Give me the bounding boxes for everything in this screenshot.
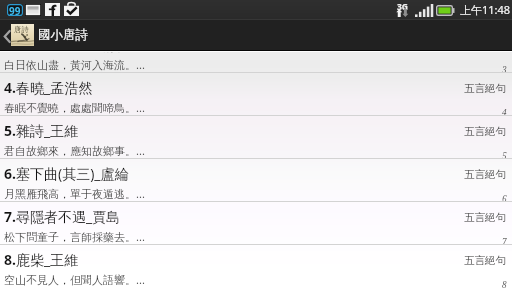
staticText: 五言絕句: [464, 254, 506, 267]
staticText: 6.塞下曲(其三)_盧綸: [4, 164, 129, 183]
staticText: 空山不見人，但聞人語響。...: [4, 272, 145, 287]
staticText: 5: [502, 150, 507, 162]
staticText: 春眠不覺曉，處處聞啼鳥。...: [4, 100, 145, 115]
staticText: 4: [502, 107, 507, 119]
staticText: 上午11:48: [460, 2, 511, 17]
staticText: 唐詩: [14, 25, 29, 34]
staticText: 7.尋隱者不遇_賈島: [4, 207, 121, 226]
staticText: 國小唐詩: [38, 27, 88, 43]
staticText: 3: [502, 64, 507, 76]
staticText: 4.春曉_孟浩然: [4, 78, 93, 97]
button[interactable]: 4.春曉_孟浩然: [0, 73, 512, 115]
button[interactable]: Back: [0, 20, 512, 50]
staticText: 8.鹿柴_王維: [4, 250, 79, 269]
staticText: 白日依山盡，黃河入海流。...: [4, 57, 145, 72]
button[interactable]: 3.登鸛雀樓_王之渙: [0, 30, 512, 72]
staticText: 5.雜詩_王維: [4, 121, 79, 140]
staticText: 8: [502, 279, 507, 288]
staticText: 松下問童子，言師採藥去。...: [4, 229, 145, 244]
button[interactable]: 8.鹿柴_王維: [0, 245, 512, 287]
staticText: 月黑雁飛高，單于夜遁逃。...: [4, 186, 145, 201]
button[interactable]: 7.尋隱者不遇_賈島: [0, 202, 512, 244]
staticText: 君自故鄉來，應知故鄉事。...: [4, 143, 145, 158]
staticText: 五言絕句: [464, 168, 506, 181]
staticText: 3.登鸛雀樓_王之渙: [4, 35, 121, 54]
staticText: 99: [9, 4, 21, 16]
staticText: 6: [502, 193, 507, 205]
staticText: 五言絕句: [464, 125, 506, 138]
staticText: 五言絕句: [464, 211, 506, 224]
staticText: 五言絕句: [464, 39, 506, 52]
button[interactable]: 6.塞下曲(其三)_盧綸: [0, 159, 512, 201]
staticText: 五言絕句: [464, 82, 506, 95]
staticText: 7: [502, 236, 507, 248]
button[interactable]: 5.雜詩_王維: [0, 116, 512, 158]
button[interactable]: Back: [0, 20, 11, 50]
staticText: 3G: [397, 1, 409, 13]
